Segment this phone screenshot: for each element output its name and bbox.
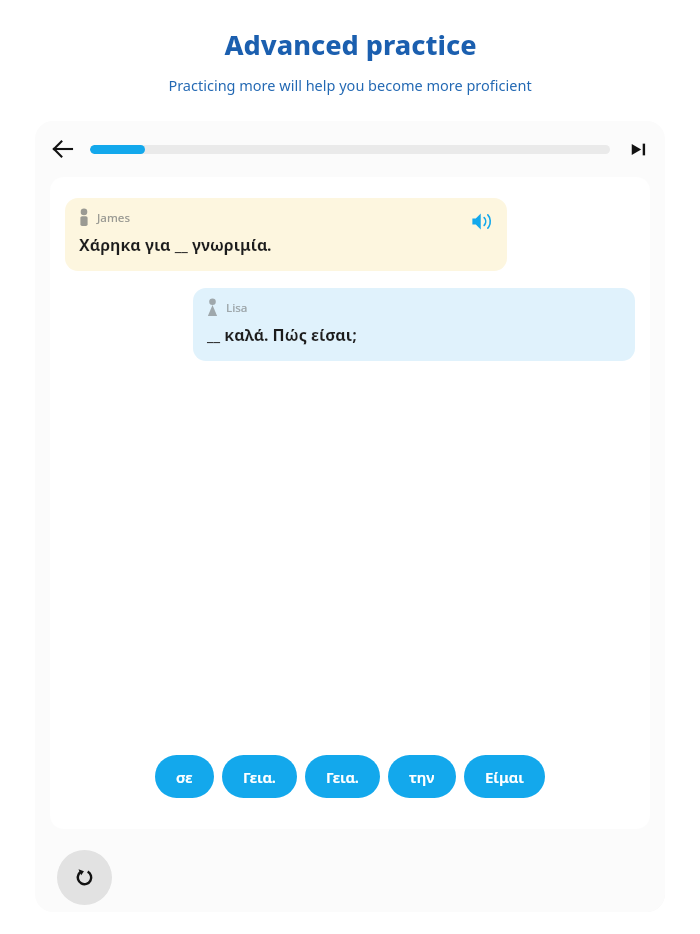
staticText: Advanced practice	[224, 26, 477, 63]
staticText: σε	[176, 767, 193, 787]
button[interactable]: Γεια.	[305, 755, 380, 798]
staticText: Γεια.	[243, 767, 276, 787]
staticText: James	[97, 210, 130, 226]
button[interactable]: Γεια.	[222, 755, 297, 798]
staticText: Χάρηκα για __ γνωριμία.	[79, 234, 272, 256]
staticText: Είμαι	[485, 767, 524, 787]
staticText: Practicing more will help you become mor…	[168, 75, 532, 95]
button[interactable]: σε	[155, 755, 214, 798]
staticText: την	[409, 767, 435, 787]
button[interactable]: Lisa	[193, 288, 635, 361]
staticText: __ καλά. Πώς είσαι;	[207, 324, 357, 346]
button[interactable]: Reset	[57, 850, 112, 905]
button[interactable]: James	[65, 198, 507, 271]
staticText: Γεια.	[326, 767, 359, 787]
button[interactable]: την	[388, 755, 456, 798]
button[interactable]: Είμαι	[464, 755, 545, 798]
button[interactable]: Skip to end	[622, 133, 654, 165]
button[interactable]: Play audio	[469, 209, 493, 233]
staticText: Lisa	[226, 300, 248, 316]
button[interactable]: Back	[45, 131, 81, 167]
